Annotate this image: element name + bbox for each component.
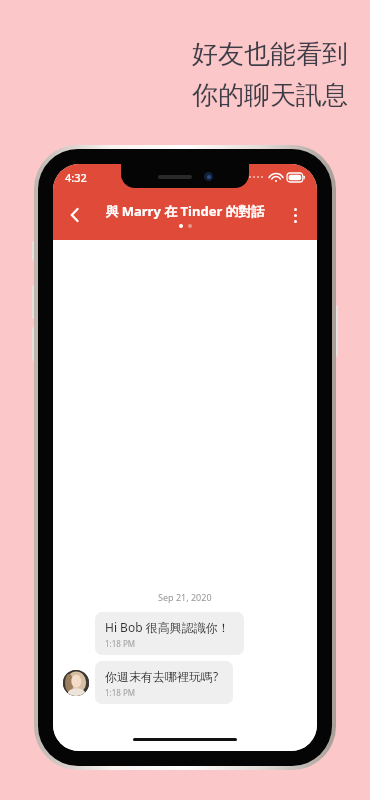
staticText: 你的聊天訊息 — [192, 79, 348, 112]
staticText: Hi Bob 很高興認識你！ — [105, 619, 230, 635]
button[interactable]: More options — [273, 193, 317, 237]
button[interactable]: Hi Bob 很高興認識你！ — [95, 612, 244, 655]
staticText: Sep 21, 2020 — [158, 591, 212, 603]
staticText: 好友也能看到 — [192, 38, 348, 71]
button[interactable]: 你週末有去哪裡玩嗎? — [95, 661, 233, 704]
staticText: 4:32 — [65, 170, 87, 185]
button[interactable]: Back — [53, 193, 97, 237]
button[interactable]: Marry profile photo — [63, 670, 89, 696]
staticText: 1:18 PM — [105, 687, 136, 698]
staticText: 1:18 PM — [105, 638, 136, 649]
staticText: 你週末有去哪裡玩嗎? — [105, 668, 219, 684]
staticText: 與 Marry 在 Tinder 的對話 — [105, 202, 265, 220]
